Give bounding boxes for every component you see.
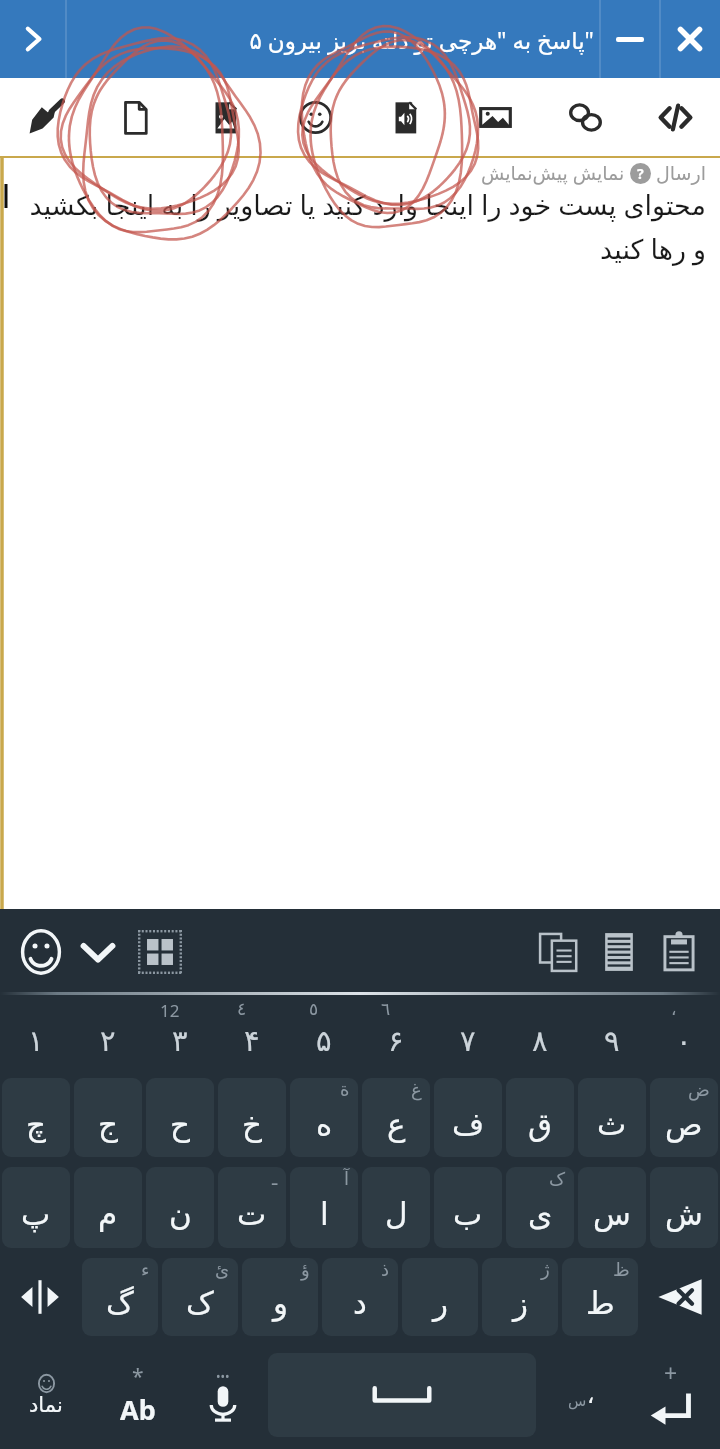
button[interactable]: خ [218,1078,286,1157]
staticText: ۷ [460,1024,476,1058]
button[interactable]: ؤ [242,1258,318,1336]
button[interactable]: Insert audio file [360,78,450,156]
button[interactable]: Backspace [640,1253,720,1341]
button[interactable]: ک [506,1167,574,1248]
button[interactable]: Select all [590,923,648,981]
staticText: ف [452,1106,485,1142]
staticText: ظ [613,1259,630,1280]
button[interactable]: Insert code [630,78,720,156]
staticText: ژ [541,1259,550,1280]
staticText: ط [586,1285,615,1321]
staticText: نمایش پیش‌نمایش [481,160,625,186]
staticText: ی [528,1196,553,1232]
button[interactable]: چ [2,1078,70,1157]
button[interactable]: Insert image file [180,78,270,156]
button[interactable]: Space [268,1353,536,1437]
button[interactable]: نمایش پیش‌نمایش [12,160,706,267]
staticText: س [593,1196,631,1232]
staticText: ؤ [301,1259,310,1280]
button[interactable]: ٥ [288,995,360,1073]
button[interactable]: نماد [0,1341,92,1449]
button[interactable]: ل [362,1167,430,1248]
button[interactable]: Enter [621,1341,720,1449]
button[interactable]: Emoji keyboard [12,923,70,981]
button[interactable]: ف [434,1078,502,1157]
button[interactable]: ظ [562,1258,638,1336]
button[interactable]: Insert picture [450,78,540,156]
staticText: ر [433,1285,448,1321]
button[interactable]: Keyboard layout [132,924,188,980]
button[interactable]: Pick colour [0,78,90,156]
button[interactable]: ۱ [0,995,72,1073]
staticText: ب [453,1196,483,1232]
button[interactable]: Voice input [183,1341,263,1449]
staticText: س [568,1392,587,1409]
button[interactable]: ۹ [576,995,648,1073]
staticText: د [353,1285,367,1321]
staticText: 12 [160,999,180,1022]
staticText: ج [98,1106,119,1142]
button[interactable]: * [92,1341,183,1449]
button[interactable]: ژ [482,1258,558,1336]
staticText: پ [21,1196,51,1232]
button[interactable]: ۸ [504,995,576,1073]
button[interactable]: ن [146,1167,214,1248]
staticText: م [98,1196,118,1232]
staticText: ۳ [172,1024,188,1058]
button[interactable]: ئ [162,1258,238,1336]
button[interactable]: آ [290,1167,358,1248]
staticText: ۱ [28,1024,44,1058]
staticText: ۵ [316,1024,332,1058]
staticText: ٦ [381,999,391,1019]
button[interactable]: ة [290,1078,358,1157]
staticText: محتوای پست خود را اینجا وارد کنید یا تصا… [12,186,706,267]
button[interactable]: Hide keyboard [70,924,126,980]
staticText: ن [169,1196,192,1232]
button[interactable]: ر [402,1258,478,1336]
button[interactable]: ض [650,1078,718,1157]
staticText: ? [637,164,644,183]
button[interactable]: Insert link [540,78,630,156]
button[interactable]: ، [648,995,720,1073]
button[interactable]: Copy [530,923,588,981]
button[interactable]: 12 [144,995,216,1073]
button[interactable]: پ [2,1167,70,1248]
button[interactable]: غ [362,1078,430,1157]
button[interactable]: س [578,1167,646,1248]
button[interactable]: Back [0,0,66,78]
staticText: و [273,1285,288,1321]
staticText: خ [242,1106,263,1142]
staticText: ة [340,1079,350,1100]
button[interactable]: ء [82,1258,158,1336]
staticText: ئ [215,1259,230,1280]
button[interactable]: ذ [322,1258,398,1336]
button[interactable]: Minimize [600,0,660,78]
button[interactable]: ح [146,1078,214,1157]
button[interactable]: ش [650,1167,718,1248]
button[interactable]: Close [660,0,720,78]
staticText: ۶ [388,1024,404,1058]
button[interactable]: ث [578,1078,646,1157]
button[interactable]: ج [74,1078,142,1157]
button[interactable]: ٤ [216,995,288,1073]
button[interactable]: ٦ [360,995,432,1073]
staticText: ا [320,1196,329,1232]
staticText: * [132,1362,144,1391]
button[interactable]: ۷ [432,995,504,1073]
button[interactable]: ۲ [72,995,144,1073]
button[interactable]: ق [506,1078,574,1157]
staticText: ـ [272,1168,278,1189]
staticText: پاسخ به "هرچی تو دلته بریز بیرون ۵" [70,24,594,55]
button[interactable]: Insert emoji [270,78,360,156]
staticText: ، [587,1382,595,1409]
staticText: ح [170,1106,191,1142]
button[interactable]: ب [434,1167,502,1248]
button[interactable]: Shift [0,1253,80,1341]
staticText: ز [513,1285,528,1321]
staticText: ث [597,1106,627,1142]
button[interactable]: Paste [650,923,708,981]
button[interactable]: م [74,1167,142,1248]
button[interactable]: س [541,1341,621,1449]
button[interactable]: ـ [218,1167,286,1248]
button[interactable]: Insert file [90,78,180,156]
